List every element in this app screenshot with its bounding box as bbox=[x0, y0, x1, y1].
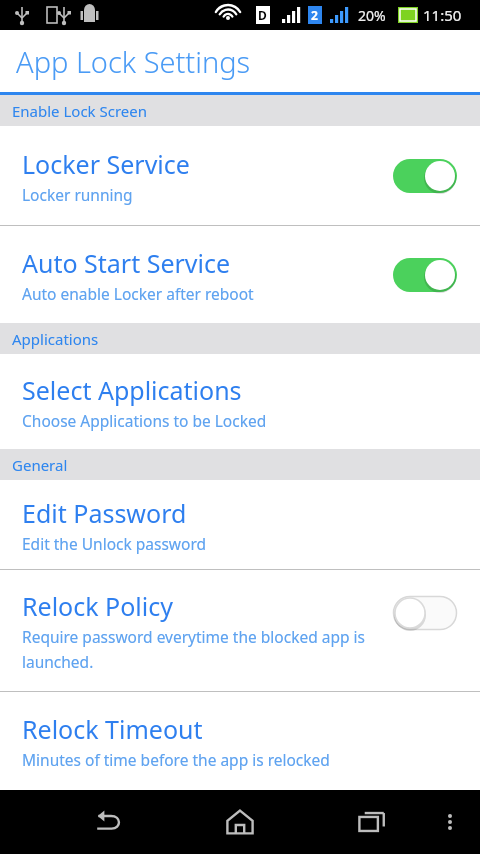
staticText: Auto enable Locker after reboot bbox=[22, 283, 254, 304]
staticText: Minutes of time before the app is relock… bbox=[22, 749, 330, 770]
staticText: General bbox=[12, 455, 68, 475]
staticText: 20% bbox=[358, 6, 386, 25]
button[interactable]: Locker Service bbox=[0, 126, 480, 225]
staticText: Locker running bbox=[22, 184, 133, 205]
staticText: 11:50 bbox=[423, 5, 462, 25]
button[interactable]: Edit Password bbox=[0, 480, 480, 569]
staticText: 2 bbox=[311, 7, 318, 23]
staticText: Relock Policy bbox=[22, 589, 173, 623]
staticText: D bbox=[258, 7, 267, 23]
button[interactable]: Recent apps bbox=[342, 790, 402, 854]
staticText: Select Applications bbox=[22, 373, 242, 407]
button[interactable]: Back bbox=[78, 790, 138, 854]
button[interactable]: Relock Timeout bbox=[0, 692, 480, 790]
staticText: Locker Service bbox=[22, 147, 190, 181]
button[interactable]: Relock Policy bbox=[0, 570, 480, 691]
button[interactable]: More options bbox=[426, 790, 474, 854]
button[interactable]: Home bbox=[210, 790, 270, 854]
staticText: Require password everytime the blocked a… bbox=[22, 626, 387, 672]
staticText: Choose Applications to be Locked bbox=[22, 410, 267, 431]
staticText: Enable Lock Screen bbox=[12, 101, 148, 121]
staticText: Edit Password bbox=[22, 496, 187, 530]
staticText: Relock Timeout bbox=[22, 712, 203, 746]
staticText: App Lock Settings bbox=[16, 42, 251, 81]
staticText: Edit the Unlock password bbox=[22, 533, 207, 554]
staticText: Applications bbox=[12, 329, 99, 349]
button[interactable]: Auto Start Service bbox=[0, 226, 480, 323]
button[interactable]: Select Applications bbox=[0, 354, 480, 449]
staticText: Auto Start Service bbox=[22, 246, 231, 280]
